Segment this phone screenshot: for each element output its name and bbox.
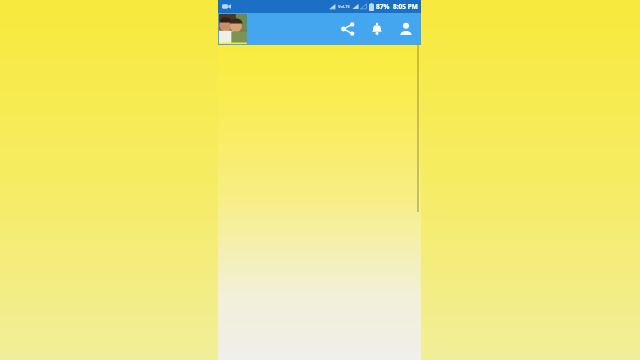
button[interactable]: Notifications: [366, 18, 388, 40]
staticText: 87%: [376, 2, 390, 11]
button[interactable]: Profile photo: [219, 14, 247, 44]
button[interactable]: Account: [395, 18, 417, 40]
staticText: 8:05 PM: [393, 2, 418, 11]
staticText: VoLTE: [338, 4, 350, 9]
button[interactable]: Share: [337, 18, 359, 40]
